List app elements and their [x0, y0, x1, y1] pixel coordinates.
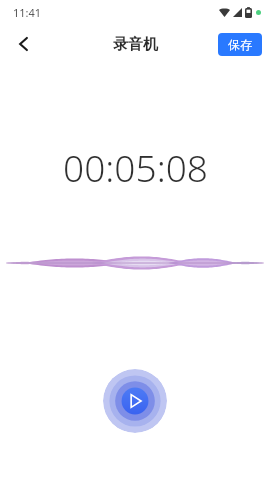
- button[interactable]: Play: [103, 369, 167, 433]
- staticText: 保存: [228, 37, 252, 52]
- staticText: 00:05:08: [63, 142, 208, 192]
- button[interactable]: Back: [4, 24, 44, 64]
- staticText: 录音机: [113, 35, 158, 54]
- staticText: 11:41: [13, 5, 42, 20]
- button[interactable]: 保存: [218, 33, 262, 56]
